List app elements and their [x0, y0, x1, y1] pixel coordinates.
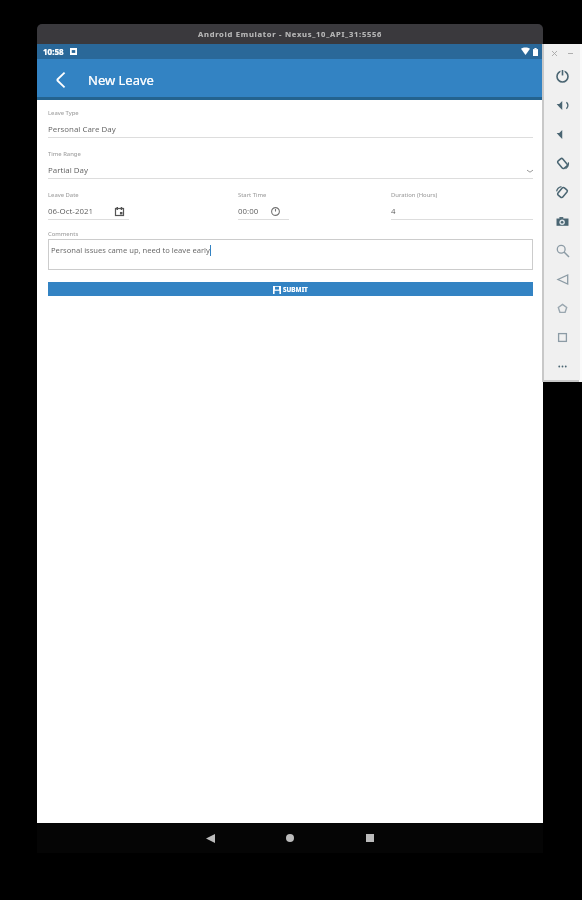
- button[interactable]: Time Range: [48, 150, 533, 179]
- button[interactable]: Screenshot: [544, 207, 580, 236]
- button[interactable]: Back: [544, 265, 580, 294]
- button[interactable]: Zoom: [544, 236, 580, 265]
- staticText: Comments: [48, 230, 79, 238]
- button[interactable]: Volume up: [544, 91, 580, 120]
- button[interactable]: Minimize: [564, 47, 576, 59]
- staticText: 10:58: [43, 46, 64, 57]
- button[interactable]: Power: [544, 62, 580, 91]
- button[interactable]: Back: [37, 59, 84, 100]
- button[interactable]: Leave Date: [48, 191, 129, 220]
- button[interactable]: Duration (Hours): [391, 191, 533, 220]
- button[interactable]: Back: [194, 823, 226, 853]
- staticText: Android Emulator - Nexus_10_API_31:5556: [198, 29, 383, 39]
- staticText: Personal issues came up, need to leave e…: [51, 245, 210, 255]
- button[interactable]: Home: [544, 294, 580, 323]
- button[interactable]: Rotate left: [544, 149, 580, 178]
- button[interactable]: Overview: [544, 323, 580, 352]
- staticText: Partial Day: [48, 165, 89, 176]
- staticText: Leave Type: [48, 109, 79, 117]
- button[interactable]: Home: [274, 823, 306, 853]
- button[interactable]: More: [544, 352, 580, 380]
- staticText: Time Range: [48, 150, 81, 158]
- staticText: SUBMIT: [283, 285, 308, 294]
- button[interactable]: Recents: [354, 823, 386, 853]
- staticText: New Leave: [88, 71, 154, 89]
- button[interactable]: Close: [548, 47, 560, 59]
- staticText: Start Time: [238, 191, 267, 199]
- staticText: Leave Date: [48, 191, 79, 199]
- button[interactable]: Rotate right: [544, 178, 580, 207]
- staticText: Personal Care Day: [48, 124, 116, 135]
- button[interactable]: Start Time: [238, 191, 289, 220]
- staticText: 06-Oct-2021: [48, 206, 93, 217]
- button[interactable]: Volume down: [544, 120, 580, 149]
- staticText: Duration (Hours): [391, 191, 438, 199]
- staticText: 4: [391, 206, 396, 217]
- staticText: 00:00: [238, 206, 259, 217]
- button[interactable]: SUBMIT: [48, 282, 533, 296]
- button[interactable]: Leave Type: [48, 109, 533, 138]
- button[interactable]: Personal issues came up, need to leave e…: [48, 239, 533, 270]
